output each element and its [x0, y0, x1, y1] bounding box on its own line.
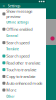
staticText: Copy to translate [6, 74, 35, 79]
button[interactable]: Search speed [0, 53, 46, 59]
staticText: Search speed [6, 40, 29, 45]
button[interactable]: Copy to translate [0, 73, 46, 80]
button[interactable]: More [0, 87, 46, 93]
staticText: < [2, 3, 4, 8]
button[interactable]: Auto enhanced mode [0, 80, 46, 87]
staticText: General [6, 34, 18, 38]
button[interactable]: Read other translate [0, 59, 46, 66]
staticText: Read other translate [6, 60, 40, 65]
button[interactable]: Offline enabled [0, 26, 46, 33]
staticText: Touch to translate [6, 67, 36, 72]
staticText: Search speed [6, 53, 29, 59]
button[interactable]: Touch to translate [0, 66, 46, 73]
staticText: Auto enhanced mode [6, 81, 42, 86]
staticText: Settings [8, 3, 21, 8]
button[interactable]: Search speed [0, 39, 46, 46]
staticText: Translate [6, 48, 19, 51]
staticText: Other [6, 95, 14, 98]
button[interactable]: Show message preview [0, 9, 46, 19]
staticText: Offline settings [6, 21, 28, 24]
button[interactable]: Back [1, 3, 5, 8]
staticText: Show message preview [6, 9, 32, 19]
staticText: Offline enabled [6, 27, 32, 32]
staticText: More [6, 87, 16, 93]
